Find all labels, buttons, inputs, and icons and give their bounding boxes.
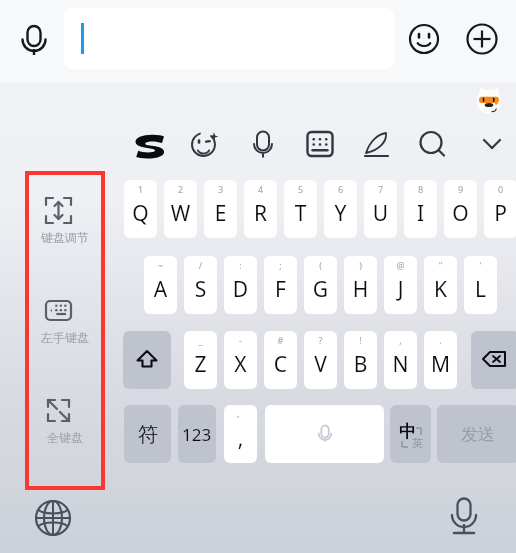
button[interactable]: ?: [304, 331, 337, 389]
staticText: /: [184, 259, 217, 271]
button[interactable]: Space: [265, 405, 384, 463]
button[interactable]: .: [424, 331, 457, 389]
staticText: 6: [324, 183, 357, 195]
staticText: B: [344, 350, 377, 379]
button[interactable]: 7: [364, 180, 397, 238]
staticText: U: [364, 199, 397, 228]
button[interactable]: 3: [204, 180, 237, 238]
staticText: Z: [184, 350, 217, 379]
button[interactable]: 2: [164, 180, 197, 238]
staticText: @: [384, 259, 417, 271]
button[interactable]: -: [224, 331, 257, 389]
staticText: 左手键盘: [25, 330, 105, 345]
staticText: I: [404, 199, 437, 228]
staticText: L: [464, 275, 497, 304]
button[interactable]: ': [464, 256, 497, 314]
staticText: -: [224, 334, 257, 346]
button[interactable]: 4: [244, 180, 277, 238]
button[interactable]: Collapse: [472, 124, 512, 164]
staticText: 全键盘: [25, 430, 105, 445]
button[interactable]: 5: [284, 180, 317, 238]
staticText: Q: [124, 199, 157, 228]
staticText: ,: [384, 334, 417, 346]
button[interactable]: ,: [384, 331, 417, 389]
staticText: J: [384, 275, 417, 304]
staticText: 4: [244, 183, 277, 195]
button[interactable]: Emoji: [404, 19, 444, 59]
staticText: !: [344, 334, 377, 346]
button[interactable]: 8: [404, 180, 437, 238]
staticText: _: [184, 334, 217, 346]
staticText: 7: [364, 183, 397, 195]
staticText: O: [444, 199, 477, 228]
button[interactable]: Keyboard: [300, 124, 340, 164]
staticText: E: [204, 199, 237, 228]
button[interactable]: ": [424, 256, 457, 314]
button[interactable]: Sogou: [126, 123, 172, 169]
staticText: K: [424, 275, 457, 304]
staticText: X: [224, 350, 257, 379]
button[interactable]: ~: [144, 256, 177, 314]
staticText: :: [224, 259, 257, 271]
button[interactable]: 0: [484, 180, 516, 238]
staticText: 中: [399, 421, 416, 442]
button[interactable]: Voice input: [14, 18, 54, 58]
button[interactable]: 符: [124, 405, 171, 463]
button[interactable]: @: [384, 256, 417, 314]
button[interactable]: Backspace: [471, 331, 516, 389]
staticText: 3: [204, 183, 237, 195]
button[interactable]: 左手键盘: [25, 297, 105, 369]
staticText: ': [464, 259, 497, 271]
button[interactable]: ): [344, 256, 377, 314]
staticText: ;: [264, 259, 297, 271]
staticText: 英: [412, 436, 423, 450]
button[interactable]: Handwriting: [357, 124, 397, 164]
staticText: 9: [444, 183, 477, 195]
button[interactable]: Search: [412, 124, 452, 164]
staticText: C: [264, 350, 297, 379]
button[interactable]: ;: [264, 256, 297, 314]
staticText: D: [224, 275, 257, 304]
button[interactable]: 。: [224, 405, 257, 463]
button[interactable]: Language: [33, 498, 73, 538]
button[interactable]: :: [224, 256, 257, 314]
staticText: G: [304, 275, 337, 304]
button[interactable]: !: [344, 331, 377, 389]
button[interactable]: Shift: [123, 331, 171, 389]
staticText: 123: [182, 423, 212, 446]
staticText: W: [164, 199, 197, 228]
staticText: ,: [224, 424, 257, 453]
button[interactable]: 发送: [437, 405, 516, 463]
button[interactable]: /: [184, 256, 217, 314]
button[interactable]: Stickers: [185, 124, 225, 164]
staticText: ": [424, 259, 457, 271]
staticText: (: [304, 259, 337, 271]
staticText: 8: [404, 183, 437, 195]
staticText: 。: [224, 408, 257, 419]
staticText: 1: [124, 183, 157, 195]
button[interactable]: Microphone: [443, 494, 485, 536]
button[interactable]: _: [184, 331, 217, 389]
staticText: F: [264, 275, 297, 304]
button[interactable]: Avatar: [474, 86, 504, 116]
staticText: Y: [324, 199, 357, 228]
button[interactable]: Chinese English toggle: [390, 405, 431, 463]
button[interactable]: 6: [324, 180, 357, 238]
staticText: M: [424, 350, 457, 379]
staticText: ~: [144, 259, 177, 271]
button[interactable]: 1: [124, 180, 157, 238]
button[interactable]: (: [304, 256, 337, 314]
staticText: ?: [304, 334, 337, 346]
button[interactable]: [64, 8, 394, 69]
button[interactable]: #: [264, 331, 297, 389]
staticText: 0: [484, 183, 516, 195]
button[interactable]: 9: [444, 180, 477, 238]
button[interactable]: 键盘调节: [25, 197, 105, 269]
staticText: 符: [138, 422, 158, 447]
button[interactable]: Voice: [243, 124, 283, 164]
button[interactable]: 123: [178, 405, 216, 463]
staticText: 发送: [461, 424, 495, 445]
button[interactable]: Add: [462, 19, 502, 59]
staticText: S: [184, 275, 217, 304]
button[interactable]: 全键盘: [25, 397, 105, 469]
